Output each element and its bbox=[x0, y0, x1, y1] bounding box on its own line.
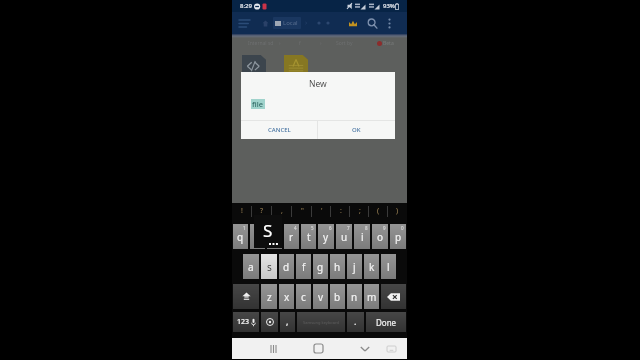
staticText: Samsung keyboard bbox=[303, 320, 340, 325]
staticText: n bbox=[351, 290, 358, 304]
button[interactable]: ! bbox=[232, 203, 252, 219]
button[interactable]: ( bbox=[369, 203, 388, 219]
button[interactable]: Period bbox=[347, 312, 364, 332]
staticText: v bbox=[318, 290, 324, 304]
staticText: b bbox=[334, 290, 341, 304]
staticText: s bbox=[267, 260, 272, 274]
staticText: file bbox=[252, 99, 264, 109]
button[interactable]: p bbox=[390, 224, 406, 249]
staticText: 8 bbox=[365, 225, 368, 231]
staticText: x bbox=[284, 290, 290, 304]
staticText: i bbox=[361, 230, 364, 244]
button[interactable]: v bbox=[313, 284, 328, 309]
button[interactable]: a bbox=[243, 254, 259, 279]
staticText: p bbox=[395, 230, 402, 244]
button[interactable]: r bbox=[284, 224, 299, 249]
button[interactable]: m bbox=[364, 284, 379, 309]
staticText: ? bbox=[260, 206, 264, 216]
button[interactable]: : bbox=[331, 203, 350, 219]
staticText: › bbox=[305, 18, 308, 28]
button[interactable]: OK bbox=[318, 121, 395, 139]
button[interactable]: Settings bbox=[261, 312, 278, 332]
button[interactable]: h bbox=[330, 254, 345, 279]
staticText: , bbox=[286, 315, 289, 327]
staticText: h bbox=[334, 260, 341, 274]
staticText: 0 bbox=[401, 225, 404, 231]
button[interactable]: y bbox=[318, 224, 334, 249]
staticText: : bbox=[340, 206, 342, 216]
staticText: 1 bbox=[243, 225, 246, 231]
button[interactable]: w bbox=[250, 224, 265, 249]
button[interactable]: u bbox=[336, 224, 352, 249]
staticText: d bbox=[283, 260, 290, 274]
button[interactable]: Shift bbox=[233, 284, 259, 309]
button[interactable]: " bbox=[292, 203, 312, 219]
staticText: f bbox=[302, 260, 306, 274]
button[interactable]: q bbox=[233, 224, 248, 249]
staticText: 7 bbox=[347, 225, 350, 231]
button[interactable]: ? bbox=[252, 203, 272, 219]
staticText: ! bbox=[241, 206, 243, 216]
button[interactable]: g bbox=[313, 254, 328, 279]
button[interactable]: n bbox=[347, 284, 362, 309]
button[interactable]: , bbox=[272, 203, 292, 219]
button[interactable]: z bbox=[261, 284, 277, 309]
staticText: 9 bbox=[383, 225, 386, 231]
button[interactable]: f bbox=[296, 254, 311, 279]
button[interactable]: Hide keyboard bbox=[356, 340, 373, 357]
button[interactable]: Change keyboard bbox=[383, 340, 400, 357]
button[interactable]: i bbox=[354, 224, 370, 249]
button[interactable]: b bbox=[330, 284, 345, 309]
button[interactable]: Premium bbox=[346, 16, 360, 30]
button[interactable]: Space bbox=[297, 312, 345, 332]
button[interactable]: d bbox=[279, 254, 294, 279]
button[interactable]: s bbox=[261, 254, 277, 279]
button[interactable]: o bbox=[372, 224, 388, 249]
staticText: r bbox=[289, 230, 294, 244]
staticText: f bbox=[299, 40, 301, 47]
button[interactable]: Symbols and voice input bbox=[233, 312, 259, 332]
button[interactable]: Backspace bbox=[381, 284, 406, 309]
staticText: k bbox=[369, 260, 375, 274]
staticText: CANCEL bbox=[268, 126, 291, 134]
staticText: z bbox=[267, 290, 272, 304]
staticText: c bbox=[301, 290, 306, 304]
button[interactable]: Recent apps bbox=[265, 340, 282, 357]
button[interactable]: More options bbox=[382, 16, 396, 30]
button[interactable]: Search bbox=[364, 15, 380, 31]
button[interactable]: Home bbox=[310, 340, 327, 357]
staticText: g bbox=[317, 260, 324, 274]
staticText: j bbox=[353, 260, 356, 274]
button[interactable]: ' bbox=[312, 203, 331, 219]
button[interactable]: ) bbox=[388, 203, 407, 219]
staticText: o bbox=[377, 230, 384, 244]
staticText: Local bbox=[283, 19, 298, 27]
button[interactable]: Navigation menu bbox=[236, 15, 252, 31]
button[interactable]: Done bbox=[366, 312, 406, 332]
button[interactable]: j bbox=[347, 254, 362, 279]
staticText: Beta bbox=[383, 40, 394, 47]
button[interactable]: ; bbox=[350, 203, 369, 219]
staticText: , bbox=[281, 206, 283, 216]
button[interactable]: CANCEL bbox=[241, 121, 317, 139]
button[interactable]: t bbox=[301, 224, 316, 249]
button[interactable]: x bbox=[279, 284, 294, 309]
staticText: New bbox=[309, 78, 327, 90]
staticText: m bbox=[367, 290, 377, 304]
button[interactable]: Local bbox=[275, 19, 298, 27]
staticText: q bbox=[237, 230, 244, 244]
button[interactable]: e bbox=[267, 224, 282, 249]
button[interactable]: Comma bbox=[280, 312, 295, 332]
button[interactable]: l bbox=[381, 254, 396, 279]
button[interactable]: c bbox=[296, 284, 311, 309]
staticText: ) bbox=[396, 206, 399, 216]
staticText: 5 bbox=[311, 225, 314, 231]
staticText: . bbox=[354, 315, 357, 327]
staticText: OK bbox=[352, 126, 361, 134]
staticText: 123 bbox=[237, 317, 250, 327]
button[interactable]: k bbox=[364, 254, 379, 279]
